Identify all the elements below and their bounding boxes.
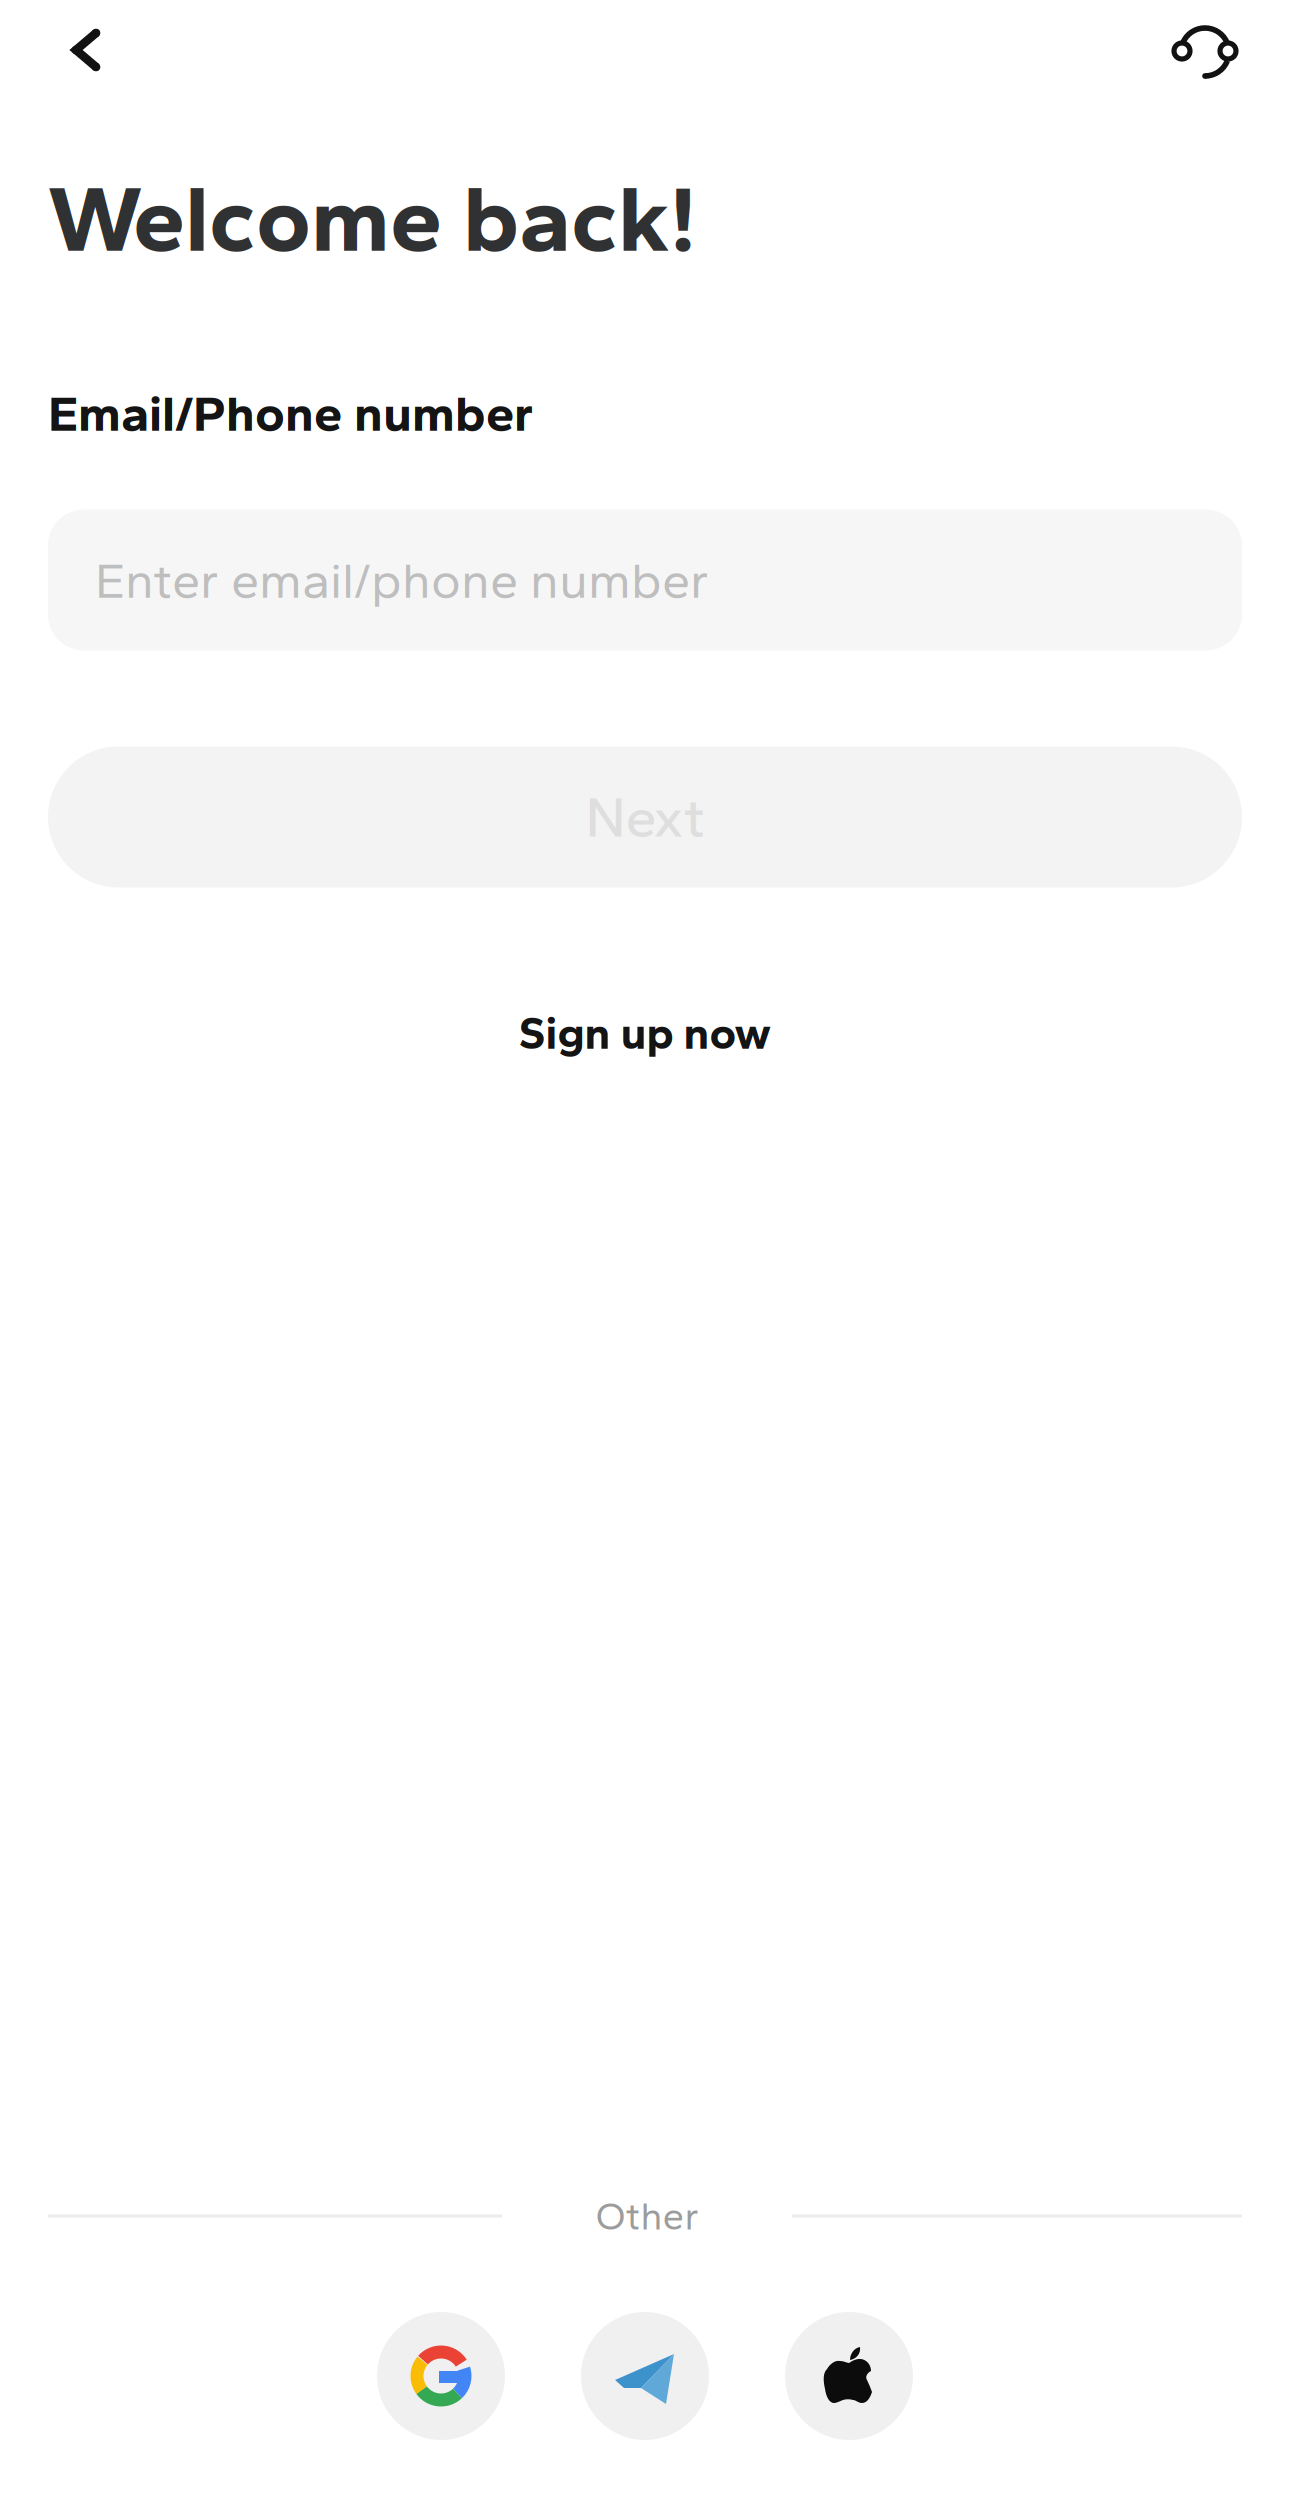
staticText: Sign up now	[518, 1006, 771, 1060]
button[interactable]: Customer support	[1157, 2, 1253, 94]
staticText: Email/Phone number	[48, 383, 533, 443]
button[interactable]: Continue with Apple	[785, 2312, 913, 2440]
staticText: Enter email/phone number	[95, 550, 709, 610]
button[interactable]: Continue with Telegram	[581, 2312, 709, 2440]
button[interactable]: Sign up now	[48, 998, 1242, 1068]
staticText: Next	[585, 783, 704, 851]
button[interactable]: Back	[46, 4, 126, 96]
staticText: Other	[595, 2193, 698, 2239]
button[interactable]: Continue with Google	[377, 2312, 505, 2440]
staticText: Welcome back!	[48, 162, 696, 274]
